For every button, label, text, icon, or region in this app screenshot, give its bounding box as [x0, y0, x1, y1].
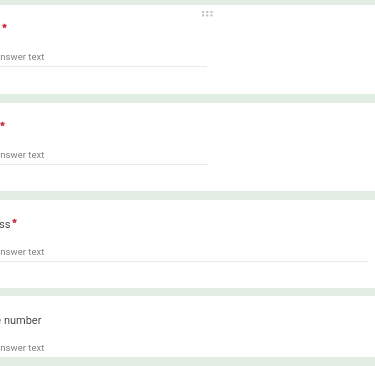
staticText: Short answer text — [0, 149, 45, 160]
button[interactable]: Email — [0, 103, 375, 191]
button[interactable]: Address — [0, 200, 375, 288]
button[interactable]: Name — [0, 5, 375, 94]
staticText: Short answer text — [0, 51, 45, 62]
staticText: Short answer text — [0, 246, 45, 257]
button[interactable]: Phone number — [0, 296, 375, 357]
staticText: Phone number — [0, 314, 42, 327]
staticText: Address — [0, 218, 11, 231]
button[interactable]: Drag handle — [202, 11, 214, 20]
staticText: Short answer text — [0, 342, 45, 353]
